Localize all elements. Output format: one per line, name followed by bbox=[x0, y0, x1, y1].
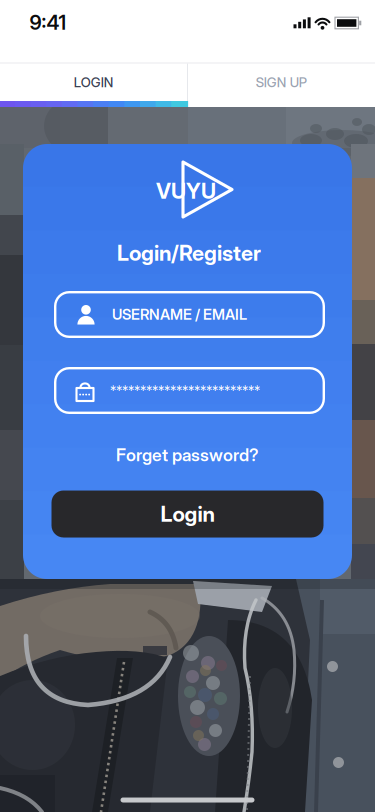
staticText: USERNAME / EMAIL bbox=[112, 306, 247, 323]
button[interactable]: LOGIN bbox=[0, 63, 187, 101]
staticText: VUYU bbox=[156, 178, 216, 204]
staticText: ************************* bbox=[110, 382, 260, 398]
staticText: Forget password? bbox=[116, 444, 259, 465]
staticText: SIGN UP bbox=[256, 74, 307, 90]
button[interactable]: Login bbox=[51, 490, 323, 537]
button[interactable]: Forget password? bbox=[116, 444, 259, 465]
staticText: LOGIN bbox=[74, 74, 114, 90]
button[interactable]: SIGN UP bbox=[188, 63, 375, 101]
staticText: Login/Register bbox=[117, 240, 261, 266]
staticText: Login bbox=[160, 501, 214, 527]
button[interactable]: ************************* bbox=[54, 367, 325, 414]
button[interactable]: USERNAME / EMAIL bbox=[54, 291, 325, 338]
staticText: 9:41 bbox=[29, 10, 66, 35]
